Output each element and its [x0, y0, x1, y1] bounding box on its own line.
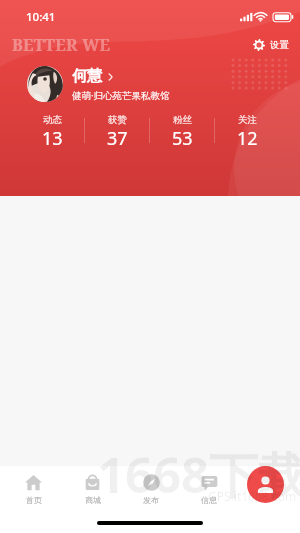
button[interactable]: 我的 [247, 466, 284, 503]
staticText: 37 [107, 126, 128, 151]
staticText: 获赞 [108, 114, 127, 126]
button[interactable]: 设置 [253, 39, 289, 51]
button[interactable]: 关注 [215, 114, 280, 154]
staticText: 设置 [270, 39, 289, 51]
staticText: 首页 [26, 495, 42, 505]
button[interactable]: 何慧 [27, 66, 170, 102]
button[interactable]: 信息 [180, 466, 238, 506]
staticText: 关注 [238, 114, 257, 126]
staticText: 10:41 [26, 9, 56, 25]
staticText: 53 [172, 126, 193, 151]
staticText: 何慧 [72, 67, 102, 86]
staticText: BETTER WE [12, 34, 111, 56]
staticText: 粉丝 [173, 114, 192, 126]
button[interactable]: 首页 [4, 466, 63, 506]
button[interactable]: 动态 [20, 114, 85, 154]
staticText: 信息 [201, 495, 217, 505]
staticText: 12 [237, 126, 258, 151]
staticText: 健萌·归心苑芒果私教馆 [72, 89, 170, 102]
staticText: 商城 [85, 495, 101, 505]
staticText: GPS.it1668.com [208, 488, 297, 504]
button[interactable]: 获赞 [85, 114, 150, 154]
staticText: 13 [42, 126, 63, 151]
staticText: 发布 [143, 495, 159, 505]
button[interactable]: 发布 [122, 466, 180, 506]
staticText: 1668下载 [97, 441, 300, 508]
staticText: 动态 [43, 114, 62, 126]
button[interactable]: 商城 [63, 466, 122, 506]
button[interactable]: 粉丝 [150, 114, 215, 154]
